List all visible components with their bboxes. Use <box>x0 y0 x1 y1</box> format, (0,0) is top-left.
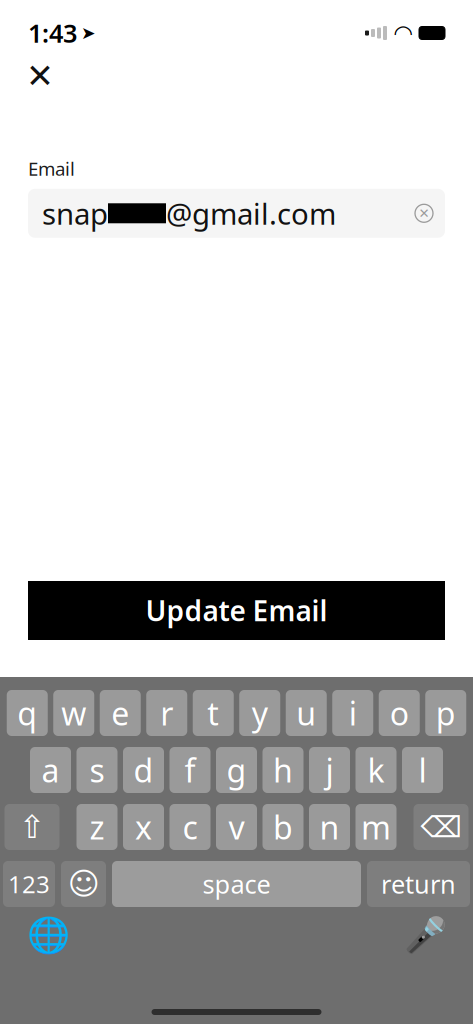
button[interactable]: q <box>7 690 48 736</box>
staticText: l <box>418 749 426 791</box>
button[interactable]: Delete <box>413 804 468 850</box>
staticText: k <box>367 749 384 791</box>
staticText: u <box>296 692 316 734</box>
staticText: ⌫ <box>420 810 461 844</box>
button[interactable]: c <box>169 804 210 850</box>
staticText: t <box>207 692 219 734</box>
button[interactable]: Dictation <box>403 913 447 957</box>
staticText: p <box>436 692 456 734</box>
staticText: b <box>273 806 293 848</box>
staticText: snap <box>42 194 108 233</box>
button[interactable]: Next keyboard <box>26 913 70 957</box>
button[interactable]: m <box>355 804 396 850</box>
staticText: f <box>184 749 195 791</box>
staticText: e <box>111 692 129 734</box>
button[interactable]: u <box>286 690 327 736</box>
button[interactable]: s <box>76 747 117 793</box>
button[interactable]: x <box>123 804 164 850</box>
staticText: s <box>89 749 104 791</box>
button[interactable]: i <box>332 690 373 736</box>
button[interactable]: j <box>309 747 350 793</box>
staticText: r <box>160 692 173 734</box>
button[interactable]: b <box>262 804 303 850</box>
button[interactable]: l <box>402 747 443 793</box>
button[interactable]: Emoji <box>61 861 106 907</box>
staticText: Update Email <box>145 592 327 629</box>
staticText: a <box>41 749 59 791</box>
button[interactable]: Clear text <box>407 196 441 230</box>
staticText: 🎤 <box>403 915 446 955</box>
button[interactable]: r <box>146 690 187 736</box>
staticText: 🌐 <box>26 915 69 955</box>
staticText: g <box>226 749 246 791</box>
button[interactable]: o <box>379 690 420 736</box>
button[interactable]: 123 <box>3 861 55 907</box>
staticText: m <box>361 806 391 848</box>
staticText: return <box>381 867 456 901</box>
staticText: @gmail.com <box>166 194 336 233</box>
button[interactable]: space <box>112 861 361 907</box>
staticText: x <box>135 806 152 848</box>
button[interactable]: k <box>355 747 396 793</box>
button[interactable]: y <box>239 690 280 736</box>
button[interactable]: g <box>216 747 257 793</box>
staticText: h <box>273 749 293 791</box>
staticText: q <box>17 692 37 734</box>
staticText: z <box>89 806 104 848</box>
button[interactable]: e <box>100 690 141 736</box>
button[interactable]: t <box>193 690 234 736</box>
staticText: ✕ <box>26 57 54 95</box>
staticText: d <box>133 749 153 791</box>
button[interactable]: v <box>216 804 257 850</box>
staticText: w <box>61 692 86 734</box>
staticText: n <box>319 806 339 848</box>
staticText: c <box>182 806 197 848</box>
button[interactable]: Shift <box>4 804 59 850</box>
button[interactable]: f <box>169 747 210 793</box>
button[interactable]: p <box>425 690 466 736</box>
staticText: ◠ <box>394 20 411 46</box>
button[interactable]: h <box>262 747 303 793</box>
button[interactable]: Close <box>22 58 58 94</box>
staticText: ☺ <box>67 867 99 901</box>
button[interactable]: n <box>309 804 350 850</box>
staticText: 123 <box>8 868 50 900</box>
staticText: ✕ <box>418 206 429 221</box>
button[interactable]: d <box>123 747 164 793</box>
staticText: space <box>202 867 270 901</box>
staticText: y <box>252 692 268 734</box>
staticText: ➤ <box>81 23 96 43</box>
button[interactable]: z <box>76 804 117 850</box>
button[interactable]: w <box>53 690 94 736</box>
button[interactable]: a <box>30 747 71 793</box>
staticText: ⇧ <box>18 809 45 845</box>
staticText: 1:43 <box>28 16 77 50</box>
staticText: o <box>390 692 409 734</box>
staticText: i <box>349 692 357 734</box>
staticText: v <box>228 806 244 848</box>
button[interactable]: return <box>367 861 470 907</box>
staticText: Email <box>28 156 75 181</box>
button[interactable]: Update Email <box>28 581 445 640</box>
staticText: j <box>325 749 333 791</box>
